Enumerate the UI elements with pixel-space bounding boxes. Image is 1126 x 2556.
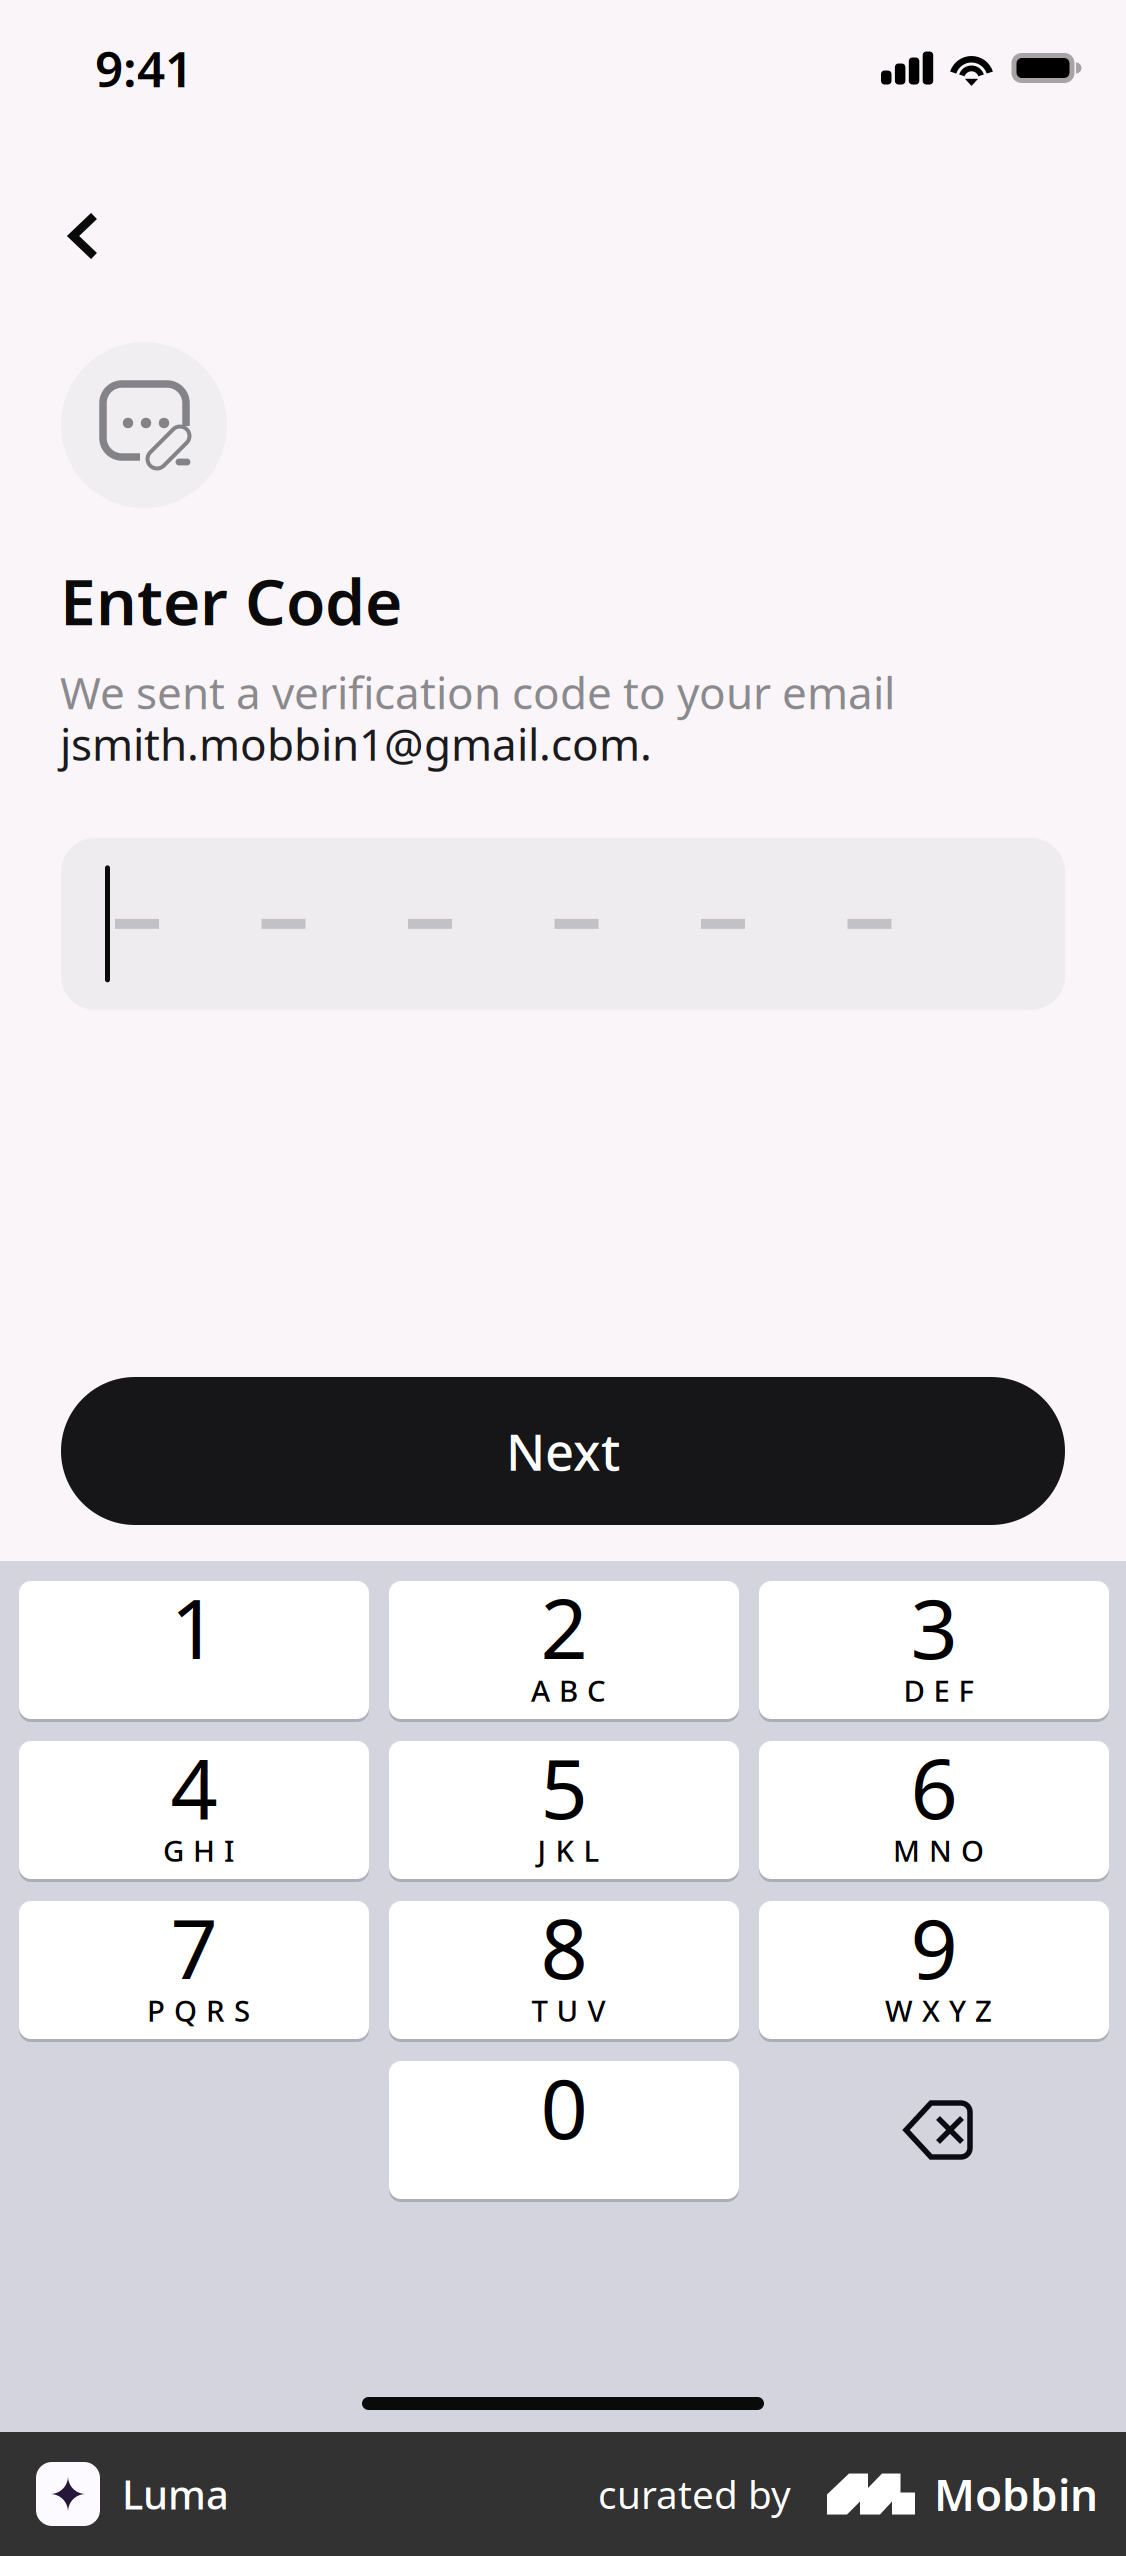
button[interactable]: Next (0, 1377, 1126, 1525)
button[interactable]: 9 (759, 1901, 1109, 2039)
button[interactable]: 4 (19, 1741, 369, 1879)
staticText: 4 (170, 1732, 217, 1842)
staticText: 0 (540, 2052, 587, 2162)
staticText: 3 (910, 1572, 957, 1682)
button[interactable]: 2 (389, 1581, 739, 1719)
button[interactable]: 5 (389, 1741, 739, 1879)
button[interactable]: Back (40, 184, 127, 288)
staticText: Enter Code (60, 558, 402, 643)
staticText: JKL (537, 1831, 599, 1870)
button[interactable]: 7 (19, 1901, 369, 2039)
staticText: ABC (531, 1671, 606, 1710)
staticText: 9:41 (95, 35, 193, 101)
button[interactable]: 1 (19, 1581, 369, 1719)
staticText: TUV (531, 1991, 605, 2030)
staticText: WXYZ (885, 1991, 992, 2030)
staticText: jsmith.mobbin1@gmail.com. (60, 714, 652, 773)
button[interactable]: 6 (759, 1741, 1109, 1879)
staticText: DEF (903, 1671, 973, 1710)
button[interactable]: 8 (389, 1901, 739, 2039)
staticText: We sent a verification code to your emai… (60, 663, 895, 721)
staticText: GHI (163, 1831, 234, 1870)
staticText: Mobbin (934, 2465, 1098, 2523)
staticText: Luma (122, 2467, 229, 2520)
staticText: 8 (540, 1892, 587, 2002)
staticText: 7 (170, 1892, 217, 2002)
staticText: 2 (540, 1572, 587, 1682)
staticText: PQRS (147, 1991, 250, 2030)
staticText: 5 (540, 1732, 587, 1842)
staticText: curated by (598, 2468, 791, 2520)
staticText: 6 (910, 1732, 957, 1842)
button[interactable]: Delete (759, 2061, 1109, 2199)
staticText: Next (506, 1417, 620, 1485)
button[interactable]: 0 (389, 2061, 739, 2199)
staticText: MNO (893, 1831, 984, 1870)
staticText: 9 (910, 1892, 957, 2002)
staticText: 1 (170, 1572, 217, 1682)
button[interactable]: 3 (759, 1581, 1109, 1719)
